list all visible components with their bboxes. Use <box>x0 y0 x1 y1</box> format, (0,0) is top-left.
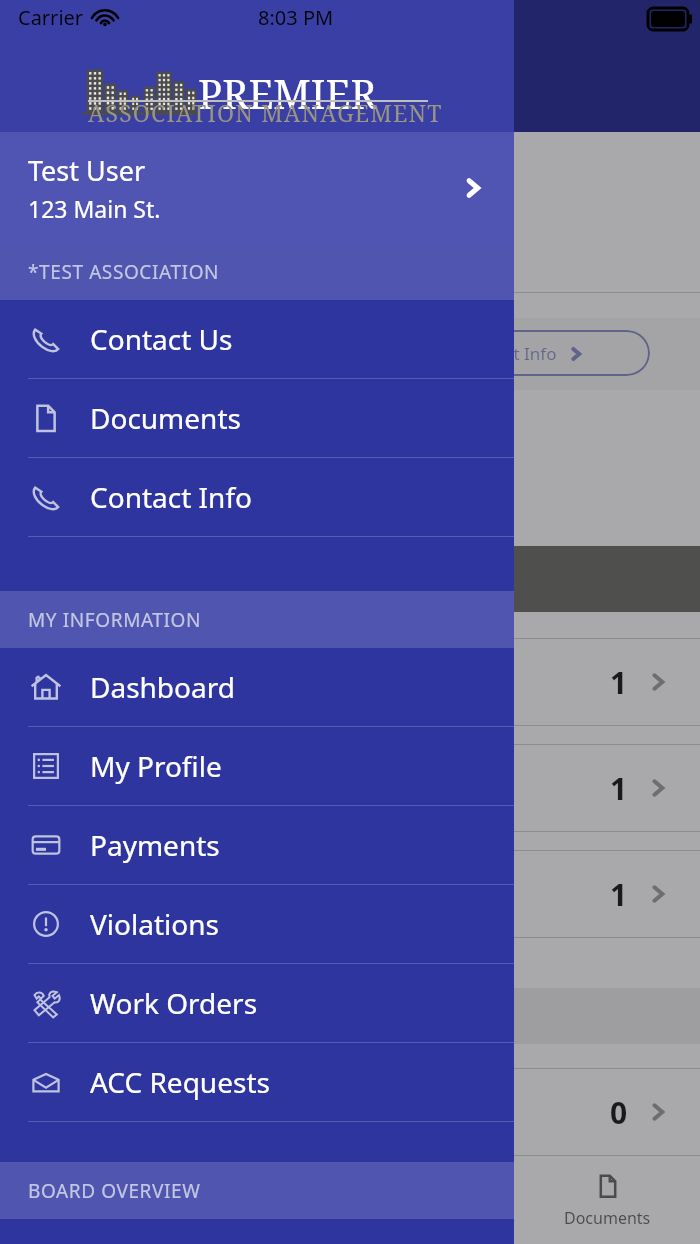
button[interactable]: Contact Us <box>0 300 514 378</box>
button[interactable]: ACC Requests <box>0 1043 514 1121</box>
other: Battery <box>648 8 694 30</box>
button[interactable]: Account Info <box>390 330 650 376</box>
staticText: 123 Main St. <box>28 193 161 224</box>
button[interactable]: Payments <box>0 806 514 884</box>
button[interactable]: My Profile <box>0 727 514 805</box>
staticText: ASSOCIATION MANAGEMENT <box>88 97 443 128</box>
staticText: Contact Info <box>90 478 252 516</box>
staticText: Violations <box>90 905 219 943</box>
button[interactable]: Contact Info <box>0 458 514 536</box>
staticText: Documents <box>90 399 241 437</box>
staticText: Test User <box>28 152 146 189</box>
staticText: 1 <box>610 662 628 703</box>
button[interactable]: Dashboard <box>0 648 514 726</box>
button[interactable]: Documents <box>514 1156 700 1244</box>
button[interactable]: Documents <box>0 379 514 457</box>
button[interactable]: Work Orders <box>0 964 514 1042</box>
staticText: ACC Requests <box>90 1063 270 1101</box>
staticText: BOARD OVERVIEW <box>28 1178 201 1204</box>
button[interactable]: 1 <box>0 744 700 832</box>
staticText: Documents <box>564 1207 651 1229</box>
staticText: PREMIER <box>198 66 377 120</box>
staticText: MY INFORMATION <box>28 607 202 633</box>
staticText: *TEST ASSOCIATION <box>28 259 220 285</box>
staticText: Dashboard <box>90 668 235 706</box>
staticText: Payments <box>90 826 220 864</box>
staticText: Contact Us <box>90 320 233 358</box>
button[interactable]: 0 <box>0 1068 700 1156</box>
staticText: My Profile <box>90 747 222 785</box>
button[interactable]: 1 <box>0 850 700 938</box>
staticText: 1 <box>610 768 628 809</box>
staticText: 1 <box>610 874 628 915</box>
button[interactable]: Test User <box>0 132 514 243</box>
staticText: Carrier <box>18 4 84 31</box>
staticText: 8:03 PM <box>258 4 334 31</box>
staticText: Account Info <box>455 342 557 365</box>
button[interactable]: Violations <box>0 885 514 963</box>
button[interactable]: 1 <box>0 638 700 726</box>
staticText: Work Orders <box>90 984 258 1022</box>
staticText: 0 <box>610 1092 628 1133</box>
